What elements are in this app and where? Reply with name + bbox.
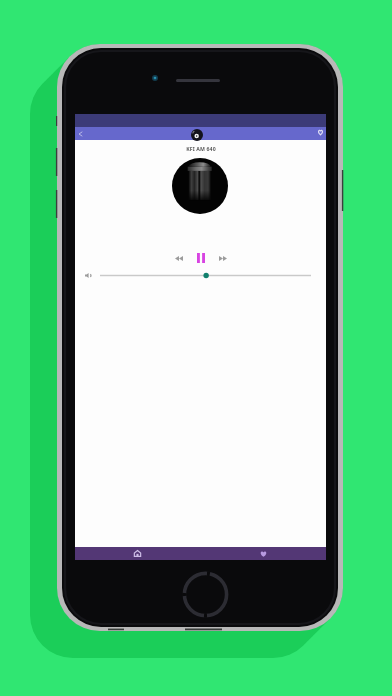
button[interactable]: Favorites: [200, 547, 326, 560]
button[interactable]: Back: [75, 127, 88, 140]
button[interactable]: Volume: [82, 269, 94, 281]
button[interactable]: Home: [75, 547, 200, 560]
button[interactable]: Volume slider: [100, 270, 311, 281]
button[interactable]: Favorite: [314, 127, 327, 140]
staticText: KFI AM 640: [186, 145, 216, 152]
button[interactable]: Rewind: [171, 250, 187, 266]
button[interactable]: Forward: [215, 250, 231, 266]
button[interactable]: Pause: [193, 250, 209, 266]
